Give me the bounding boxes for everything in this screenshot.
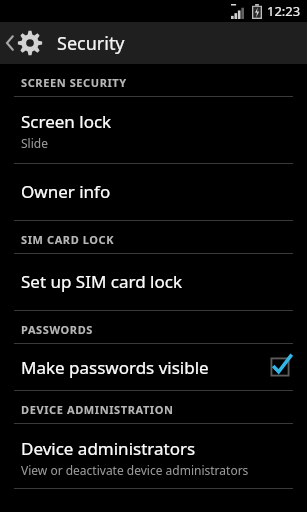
staticText: Device administrators	[21, 437, 196, 460]
staticText: SCREEN SECURITY	[21, 75, 127, 90]
button[interactable]: Screen lock	[0, 97, 307, 163]
button[interactable]: Device administrators	[0, 424, 307, 488]
staticText: SIM CARD LOCK	[21, 232, 115, 247]
staticText: Owner info	[21, 180, 111, 203]
staticText: Slide	[21, 135, 48, 151]
button[interactable]: Set up SIM card lock	[0, 254, 307, 310]
staticText: PASSWORDS	[21, 322, 93, 337]
staticText: Set up SIM card lock	[21, 270, 182, 293]
staticText: Make passwords visible	[21, 356, 209, 379]
staticText: 12:23	[267, 2, 301, 20]
button[interactable]: Navigate up	[0, 26, 47, 60]
staticText: Screen lock	[21, 110, 112, 133]
staticText: View or deactivate device administrators	[21, 462, 249, 478]
button[interactable]: Owner info	[0, 164, 307, 220]
button[interactable]: Make passwords visible checkbox	[267, 354, 293, 380]
staticText: Security	[57, 31, 125, 56]
staticText: DEVICE ADMINISTRATION	[21, 402, 174, 417]
button[interactable]: Make passwords visible	[0, 344, 307, 390]
